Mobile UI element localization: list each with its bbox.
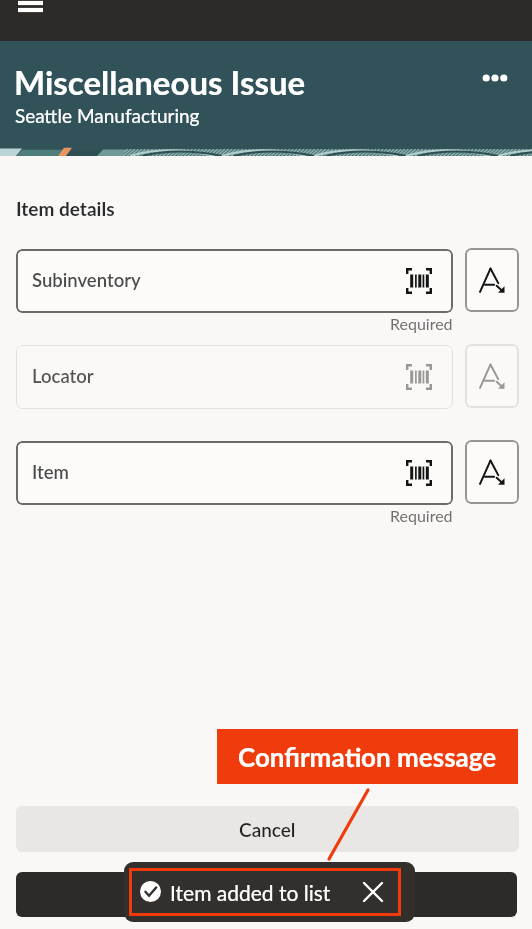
button[interactable]: Open navigation menu	[8, 0, 52, 27]
staticText: Item	[32, 461, 69, 483]
button[interactable]: Cancel	[16, 806, 519, 852]
button[interactable]: Dismiss	[358, 877, 387, 906]
staticText: Confirmation message	[238, 741, 497, 772]
button[interactable]: Add to list	[16, 872, 517, 917]
button[interactable]: Locator	[16, 345, 453, 409]
staticText: Locator	[32, 365, 94, 387]
staticText: Seattle Manufacturing	[15, 104, 200, 127]
button[interactable]: Scan text for Subinventory	[465, 248, 519, 312]
button[interactable]: Scan text for Item	[465, 440, 519, 504]
staticText: Cancel	[239, 818, 296, 841]
button[interactable]: More options	[474, 57, 516, 99]
staticText: Subinventory	[32, 269, 141, 291]
staticText: Required	[390, 314, 453, 333]
button[interactable]: Scan text for Locator	[465, 344, 519, 408]
button[interactable]: Item	[16, 441, 453, 505]
staticText: Item details	[16, 197, 115, 220]
staticText: Required	[390, 506, 453, 525]
staticText: Item added to list	[170, 880, 331, 905]
staticText: Miscellaneous Issue	[14, 62, 306, 102]
button[interactable]: Subinventory	[16, 249, 453, 313]
